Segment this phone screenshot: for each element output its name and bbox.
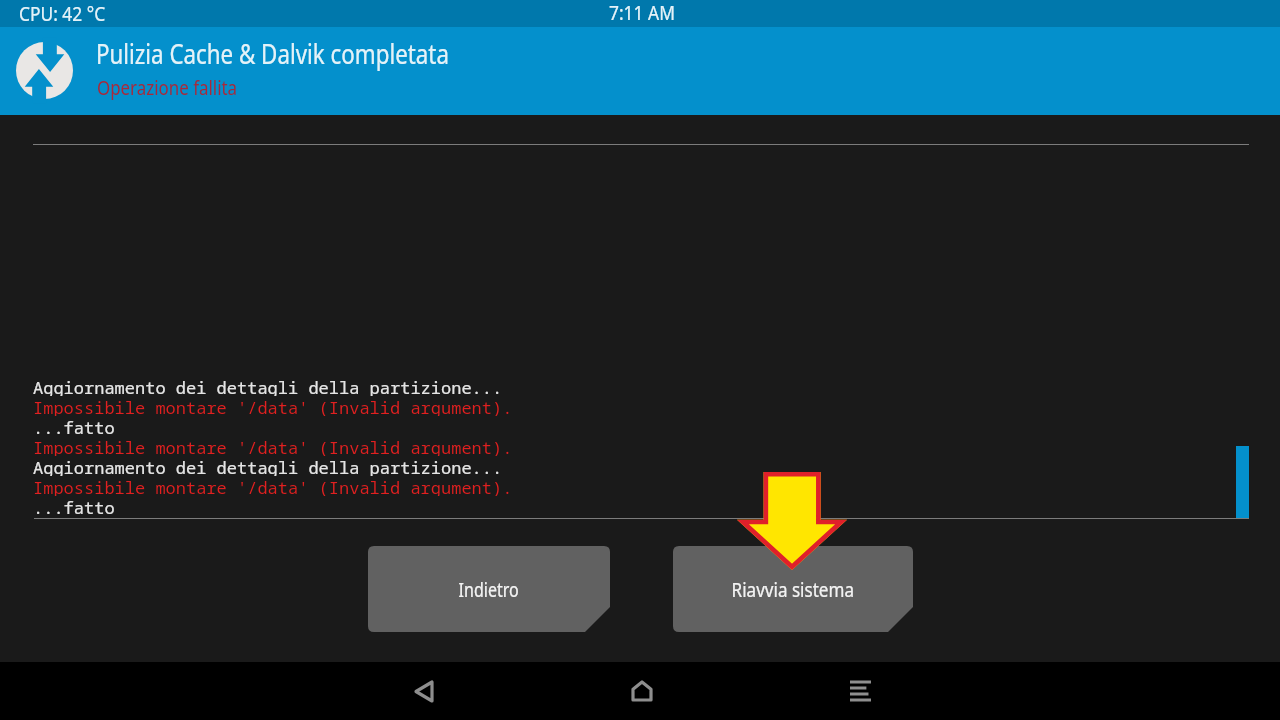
button[interactable]: Home	[617, 666, 667, 716]
staticText: Operazione fallita	[97, 74, 237, 101]
staticText: Impossibile montare '/data' (Invalid arg…	[33, 476, 513, 496]
staticText: Aggiornamento dei dettagli della partizi…	[33, 456, 503, 476]
staticText: Indietro	[459, 576, 519, 603]
staticText: Aggiornamento dei dettagli della partizi…	[33, 376, 503, 396]
staticText: 7:11 AM	[609, 0, 675, 26]
staticText: Pulizia Cache & Dalvik completata	[96, 35, 449, 72]
button[interactable]: Riavvia sistema	[673, 546, 913, 632]
staticText: ...fatto	[33, 416, 115, 436]
button[interactable]: Back	[399, 666, 449, 716]
staticText: Impossibile montare '/data' (Invalid arg…	[33, 436, 513, 456]
staticText: CPU: 42 °C	[19, 0, 106, 27]
button[interactable]: Recent apps	[835, 666, 885, 716]
staticText: Impossibile montare '/data' (Invalid arg…	[33, 396, 513, 416]
staticText: ...fatto	[33, 496, 115, 516]
staticText: Riavvia sistema	[732, 576, 854, 603]
button[interactable]: Indietro	[368, 546, 610, 632]
